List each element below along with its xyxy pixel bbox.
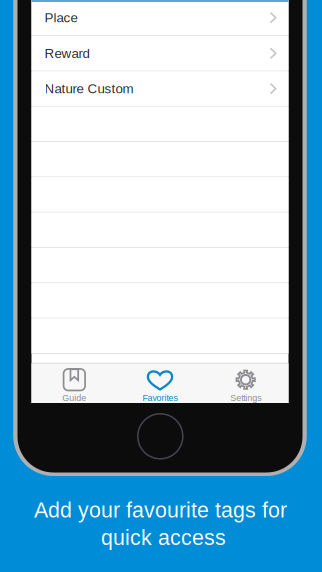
button[interactable]: Guide [31, 364, 117, 403]
button[interactable]: Place [31, 0, 288, 35]
staticText: Reward [44, 46, 89, 61]
staticText: Place [44, 10, 77, 25]
button[interactable]: Nature Custom [31, 71, 288, 106]
staticText: Favorites [142, 393, 177, 403]
staticText: Settings [230, 393, 261, 403]
staticText: Add your favourite tags for [34, 498, 287, 522]
staticText: Guide [62, 393, 86, 403]
button[interactable]: Settings [203, 364, 288, 403]
staticText: Nature Custom [44, 81, 133, 96]
button[interactable]: Reward [31, 36, 288, 71]
button[interactable]: Favorites [117, 364, 203, 403]
staticText: quick access [101, 526, 226, 549]
